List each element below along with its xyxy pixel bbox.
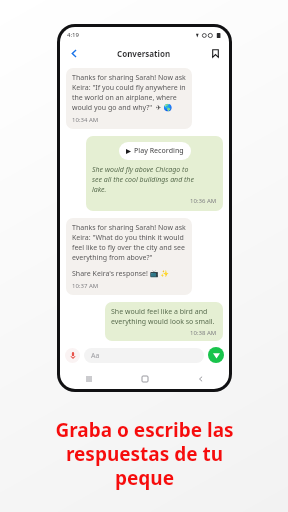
button[interactable]: Home	[117, 376, 173, 382]
staticText: lake.	[92, 185, 107, 195]
staticText: Keira: "What do you think it would	[72, 233, 184, 243]
button[interactable]: Back	[66, 45, 82, 61]
staticText: 10:37 AM	[72, 282, 99, 290]
staticText: would you go and why?" ✈️ 🌎	[72, 103, 173, 113]
button[interactable]: Play Recording	[86, 136, 223, 211]
staticText: everything from above?"	[72, 253, 153, 263]
button[interactable]: Bookmark	[207, 45, 223, 61]
staticText: 10:38 AM	[190, 329, 217, 336]
button[interactable]: Record voice	[65, 348, 80, 363]
staticText: 4:19	[67, 31, 79, 39]
staticText: everything would look so small.	[111, 317, 215, 327]
staticText: 10:36 AM	[190, 197, 217, 205]
button[interactable]: Recents	[60, 376, 117, 382]
staticText: Graba o escribe las respuestas de tu peq…	[55, 417, 234, 490]
button[interactable]: She would feel like a bird and	[105, 302, 223, 341]
button[interactable]: Aa	[84, 348, 204, 363]
staticText: feel like to fly over the city and see	[72, 243, 185, 253]
staticText: Keira: "If you could fly anywhere in	[72, 83, 186, 93]
staticText: Share Keira's response! 📺 ✨	[72, 269, 170, 279]
staticText: 10:34 AM	[72, 116, 99, 124]
staticText: the world on an airplane, where	[72, 93, 177, 103]
button[interactable]: Thanks for sharing Sarah! Now ask	[66, 218, 192, 295]
staticText: Thanks for sharing Sarah! Now ask	[72, 223, 186, 233]
button[interactable]: Play Recording	[119, 142, 191, 160]
button[interactable]: Back	[173, 376, 229, 382]
staticText: see all the cool buildings and the	[92, 175, 194, 185]
staticText: Play Recording	[134, 146, 184, 156]
staticText: Thanks for sharing Sarah! Now ask	[72, 73, 186, 83]
button[interactable]: Thanks for sharing Sarah! Now ask	[66, 68, 192, 129]
staticText: Conversation	[117, 48, 171, 59]
staticText: She would fly above Chicago to	[92, 165, 189, 175]
staticText: Aa	[91, 351, 100, 361]
button[interactable]: Send	[208, 347, 224, 363]
staticText: She would feel like a bird and	[111, 307, 208, 317]
